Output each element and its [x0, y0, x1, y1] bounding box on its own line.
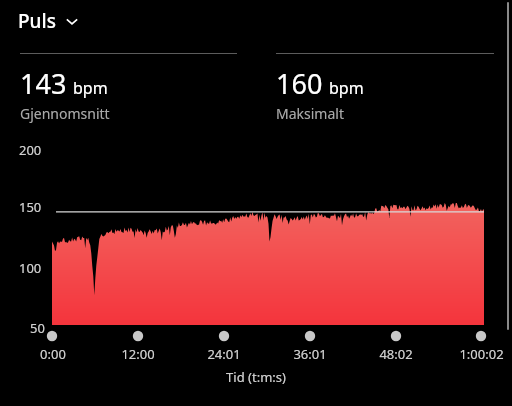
- staticText: bpm: [329, 77, 364, 99]
- staticText: 100: [19, 259, 42, 277]
- staticText: Puls: [18, 8, 56, 34]
- staticText: 160: [276, 65, 323, 102]
- staticText: 48:02: [379, 345, 413, 363]
- staticText: 36:01: [293, 345, 327, 363]
- staticText: 24:01: [207, 345, 241, 363]
- staticText: 12:00: [121, 345, 155, 363]
- staticText: 143: [20, 65, 67, 102]
- staticText: 50: [30, 319, 45, 337]
- staticText: Tid (t:m:s): [226, 368, 286, 386]
- staticText: 200: [19, 141, 42, 159]
- staticText: 1:00:02: [459, 345, 504, 363]
- staticText: bpm: [73, 77, 108, 99]
- staticText: Maksimalt: [276, 104, 344, 123]
- staticText: 0:00: [40, 345, 66, 363]
- staticText: Gjennomsnitt: [20, 104, 110, 123]
- staticText: 150: [19, 198, 42, 216]
- button[interactable]: Puls: [18, 6, 85, 36]
